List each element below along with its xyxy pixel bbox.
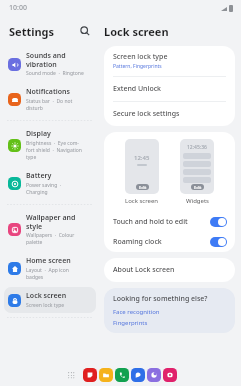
staticText: Roaming clock xyxy=(113,237,162,247)
staticText: Secure lock settings xyxy=(113,109,180,119)
button[interactable]: Extend Unlock xyxy=(104,77,235,101)
button[interactable]: Search xyxy=(76,22,94,40)
button[interactable]: Screen lock type xyxy=(104,46,235,76)
button[interactable]: Secure lock settings xyxy=(104,102,235,126)
staticText: Power saving · Charging xyxy=(26,182,62,196)
button[interactable]: Fingerprints xyxy=(113,319,148,327)
staticText: Edit xyxy=(139,185,147,190)
button[interactable]: smart xyxy=(147,368,161,382)
staticText: Status bar · Do not disturb xyxy=(26,98,73,112)
staticText: Extend Unlock xyxy=(113,84,162,94)
button[interactable]: Lock screen xyxy=(125,139,159,194)
button[interactable]: Touch and hold to edit xyxy=(104,212,235,232)
button[interactable]: Face recognition xyxy=(113,308,160,316)
staticText: 12:45 xyxy=(134,154,150,162)
staticText: Battery xyxy=(26,171,52,181)
staticText: 12:45:36 xyxy=(187,144,207,151)
staticText: Wallpapers · Colour palette xyxy=(26,232,75,246)
staticText: Brightness · Eye com- fort shield · Navi… xyxy=(26,140,82,161)
button[interactable]: msg xyxy=(131,368,145,382)
staticText: Lock screen xyxy=(104,24,169,39)
button[interactable]: gallery xyxy=(163,368,177,382)
button[interactable]: About Lock screen xyxy=(104,258,235,282)
button[interactable]: note xyxy=(83,368,97,382)
staticText: Looking for something else? xyxy=(113,294,208,304)
staticText: Display xyxy=(26,129,51,139)
button[interactable]: Display xyxy=(4,125,96,165)
staticText: Home screen xyxy=(26,256,71,266)
button[interactable]: Roaming clock xyxy=(104,232,235,252)
button[interactable]: Battery xyxy=(4,167,96,200)
staticText: Settings xyxy=(9,24,55,39)
button[interactable]: Widgets xyxy=(180,139,214,194)
staticText: Screen lock type xyxy=(113,52,168,62)
staticText: Lock screen xyxy=(125,197,159,205)
staticText: 10:00 xyxy=(9,3,27,13)
button[interactable]: Wallpaper and style xyxy=(4,209,96,250)
staticText: About Lock screen xyxy=(113,265,175,275)
staticText: Sound mode · Ringtone xyxy=(26,70,84,77)
button[interactable]: Lock screen xyxy=(4,287,96,313)
button[interactable]: Notifications xyxy=(4,83,96,116)
staticText: Sounds and vibration xyxy=(26,51,66,69)
staticText: Screen lock type xyxy=(26,302,65,309)
staticText: Touch and hold to edit xyxy=(113,217,188,227)
staticText: Edit xyxy=(194,185,202,190)
staticText: Wallpaper and style xyxy=(26,213,76,231)
staticText: Pattern, Fingerprints xyxy=(113,63,162,70)
staticText: Widgets xyxy=(186,197,209,205)
staticText: Notifications xyxy=(26,87,70,97)
button[interactable]: Home screen xyxy=(4,252,96,285)
button[interactable]: files xyxy=(99,368,113,382)
staticText: Layout · App icon badges xyxy=(26,267,69,281)
button[interactable]: Sounds and vibration xyxy=(4,47,96,81)
button[interactable]: phone xyxy=(115,368,129,382)
staticText: Lock screen xyxy=(26,291,67,301)
button[interactable]: Apps xyxy=(64,368,78,382)
